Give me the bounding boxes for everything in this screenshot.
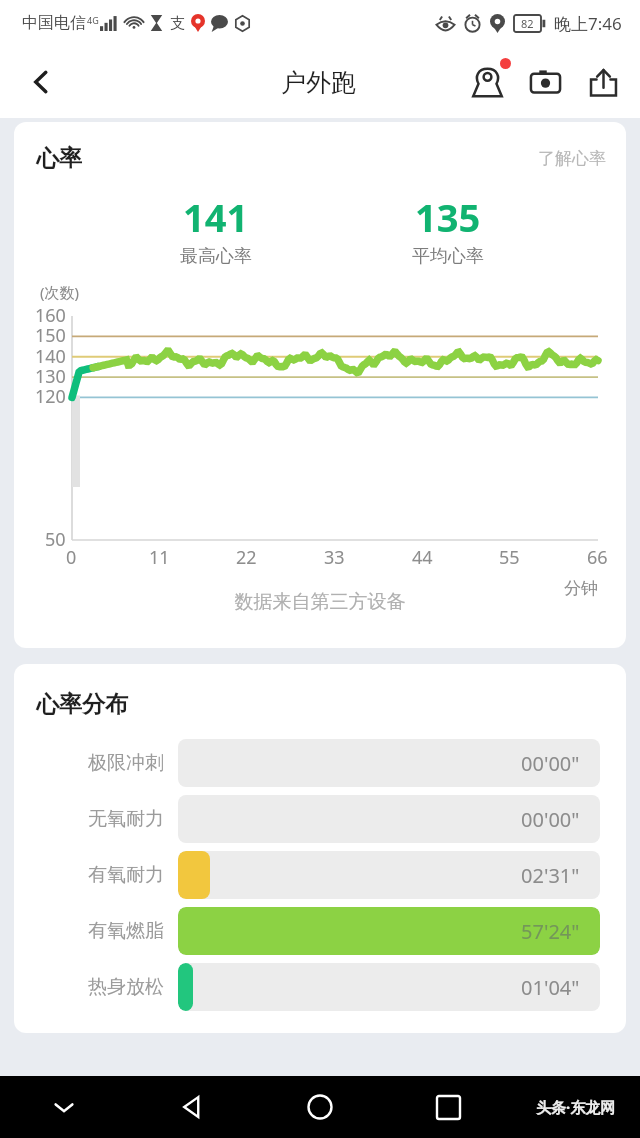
button[interactable]: Hide keyboard [0, 1076, 128, 1138]
staticText: 平均心率 [412, 245, 484, 268]
button[interactable]: Home [256, 1076, 384, 1138]
staticText: 热身放松 [88, 975, 164, 999]
staticText: 82 [521, 16, 534, 31]
staticText: 00'00" [521, 750, 580, 777]
staticText: 数据来自第三方设备 [14, 590, 626, 614]
button[interactable]: Back [128, 1076, 256, 1138]
staticText: 02'31" [521, 862, 580, 889]
staticText: 11 [149, 545, 170, 570]
staticText: 57'24" [521, 918, 580, 945]
staticText: 141 [183, 191, 249, 243]
staticText: 135 [415, 191, 481, 243]
staticText: 无氧耐力 [88, 807, 164, 831]
staticText: 150 [35, 323, 66, 348]
button[interactable]: 有氧燃脂 [14, 903, 626, 959]
staticText: 最高心率 [180, 245, 252, 268]
staticText: 140 [35, 344, 66, 369]
staticText: 晚上7:46 [554, 12, 622, 35]
staticText: (次数) [40, 282, 80, 302]
staticText: 支 [170, 14, 185, 33]
staticText: 66 [587, 545, 608, 570]
staticText: 心率 [36, 144, 82, 173]
staticText: 160 [35, 303, 66, 328]
staticText: 120 [35, 384, 66, 409]
staticText: 有氧耐力 [88, 863, 164, 887]
button[interactable]: 热身放松 [14, 959, 626, 1015]
button[interactable]: 极限冲刺 [14, 735, 626, 791]
staticText: 01'04" [521, 974, 580, 1001]
button[interactable]: Map [458, 53, 516, 111]
button[interactable]: Share [574, 53, 632, 111]
staticText: 分钟 [564, 578, 598, 599]
staticText: 有氧燃脂 [88, 919, 164, 943]
button[interactable]: 无氧耐力 [14, 791, 626, 847]
staticText: 中国电信 [22, 13, 86, 33]
staticText: 33 [324, 545, 345, 570]
staticText: 极限冲刺 [88, 751, 164, 775]
staticText: 22 [236, 545, 257, 570]
staticText: 0 [66, 545, 77, 570]
staticText: 00'00" [521, 806, 580, 833]
staticText: 50 [45, 527, 66, 552]
staticText: 44 [412, 545, 433, 570]
button[interactable]: Camera [516, 53, 574, 111]
staticText: 心率分布 [36, 690, 128, 719]
staticText: 55 [499, 545, 520, 570]
staticText: 头条·东龙网 [536, 1097, 616, 1117]
staticText: 了解心率 [538, 148, 606, 169]
button[interactable]: 了解心率 [534, 144, 610, 173]
staticText: 户外跑 [281, 67, 356, 98]
staticText: 4G [87, 14, 99, 26]
staticText: 130 [35, 364, 66, 389]
button[interactable]: Back [14, 55, 68, 109]
button[interactable]: 有氧耐力 [14, 847, 626, 903]
button[interactable]: Recents [384, 1076, 512, 1138]
